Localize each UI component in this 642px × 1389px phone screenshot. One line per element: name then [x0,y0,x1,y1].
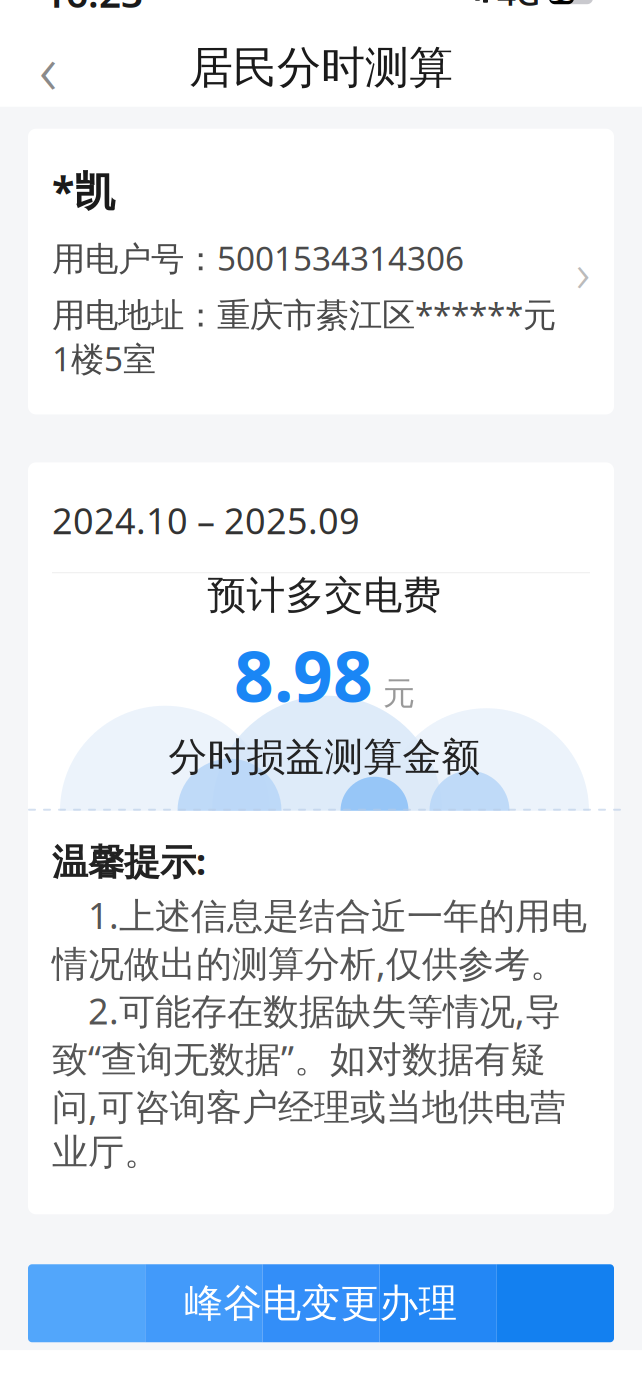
staticText: 1.上述信息是结合近一年的用电情况做出的测算分析,仅供参考。 [52,891,587,987]
staticText: › [576,236,590,307]
staticText: 55 [549,0,573,7]
staticText: 用电户号：5001534314306 [52,236,464,280]
button[interactable]: Back [16,36,80,100]
staticText: 预计多交电费 [207,572,441,619]
staticText: 温馨提示: [52,837,206,885]
staticText: ‹ [39,22,57,114]
staticText: *凯 [52,163,115,218]
staticText: 用电地址：重庆市綦江区******元1楼5室 [52,292,556,380]
staticText: 元 [383,674,415,713]
staticText: 分时损益测算金额 [168,733,480,781]
staticText: 居民分时测算 [189,41,453,95]
button[interactable]: *凯 [28,129,614,414]
button[interactable]: 峰谷电变更办理 [28,1264,614,1342]
staticText: 8.98 [234,629,373,721]
staticText: 2024.10 – 2025.09 [52,496,360,544]
staticText: 16:23 [44,0,143,18]
staticText: 2.可能存在数据缺失等情况,导致“查询无数据”。如对数据有疑问,可咨询客户经理或… [52,987,566,1174]
staticText: 4G [497,0,540,15]
staticText: 峰谷电变更办理 [184,1279,457,1327]
